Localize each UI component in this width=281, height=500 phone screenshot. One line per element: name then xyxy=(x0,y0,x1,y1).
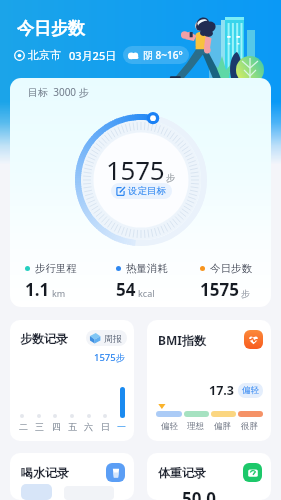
staticText: 周报 xyxy=(104,333,122,344)
staticText: 54 xyxy=(116,278,136,301)
staticText: 三 xyxy=(35,421,44,432)
staticText: 五 xyxy=(68,421,77,432)
button[interactable]: 体重记录 xyxy=(147,453,271,500)
staticText: 喝水记录 xyxy=(21,465,69,480)
staticText: 步数记录 xyxy=(20,331,68,346)
staticText: 17.3 xyxy=(209,382,234,399)
staticText: 今日步数 xyxy=(17,18,85,39)
staticText: 1.1 xyxy=(25,278,50,301)
button[interactable]: 阴 8~16° xyxy=(123,46,189,64)
staticText: km xyxy=(52,287,66,299)
button[interactable]: 设定目标 xyxy=(111,183,172,199)
staticText: 四 xyxy=(52,421,61,432)
staticText: 今日步数 xyxy=(210,262,252,275)
staticText: 理想 xyxy=(187,421,204,432)
staticText: 很胖 xyxy=(241,421,258,432)
staticText: 偏轻 xyxy=(242,385,259,396)
button[interactable]: 喝水记录 xyxy=(106,463,125,482)
staticText: 偏轻 xyxy=(161,421,178,432)
staticText: 50.0 xyxy=(182,487,216,500)
staticText: 1575步 xyxy=(94,351,126,364)
staticText: 阴 8~16° xyxy=(143,48,183,62)
button[interactable]: BMI xyxy=(244,330,263,349)
staticText: 步 xyxy=(241,288,250,299)
staticText: 1575 xyxy=(106,152,165,187)
staticText: 步 xyxy=(166,172,176,184)
staticText: 二 xyxy=(19,421,28,432)
staticText: 一 xyxy=(117,421,126,432)
button[interactable]: 喝水记录 xyxy=(10,453,134,500)
staticText: BMI指数 xyxy=(158,332,206,348)
button[interactable]: BMI指数 xyxy=(147,320,271,441)
staticText: 步行里程 xyxy=(35,262,77,275)
staticText: 北京市 xyxy=(28,48,61,62)
staticText: 热量消耗 xyxy=(126,262,168,275)
button[interactable]: 周报 xyxy=(86,330,127,346)
staticText: 六 xyxy=(84,421,93,432)
staticText: 体重记录 xyxy=(158,465,206,480)
staticText: 目标 3000 步 xyxy=(28,85,89,99)
staticText: 03月25日 xyxy=(69,48,117,63)
button[interactable]: 体重记录 xyxy=(243,463,262,482)
button[interactable]: 步数记录 xyxy=(10,320,134,441)
staticText: 日 xyxy=(101,421,110,432)
staticText: 1575 xyxy=(200,278,239,301)
staticText: kcal xyxy=(138,287,155,299)
staticText: 偏胖 xyxy=(214,421,231,432)
staticText: 设定目标 xyxy=(128,185,166,197)
